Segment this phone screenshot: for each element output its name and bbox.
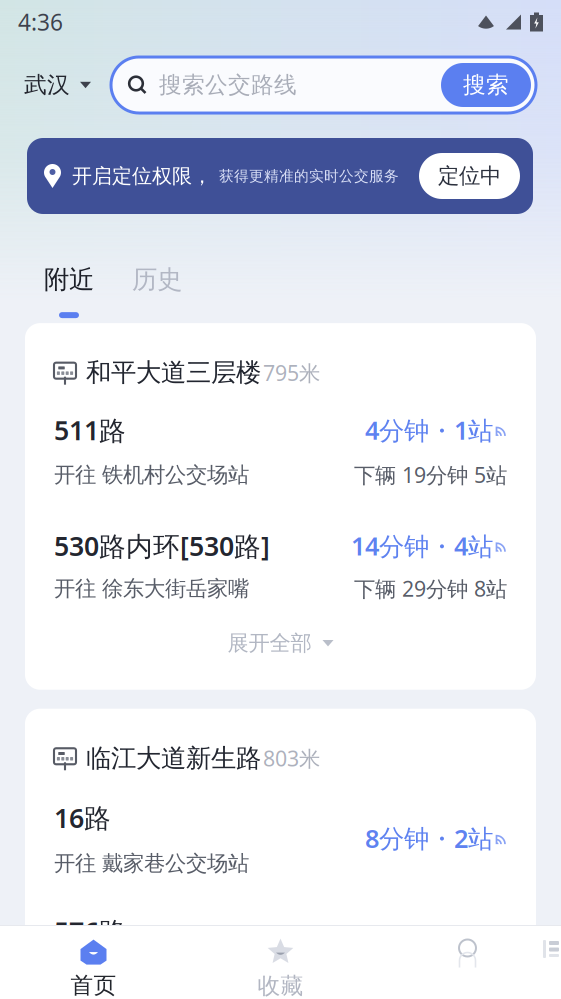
staticText: 下辆 19分钟 5站 — [354, 461, 507, 489]
staticText: 武汉 — [24, 71, 70, 99]
staticText: 搜索公交路线 — [159, 71, 297, 99]
button[interactable]: 首页 — [0, 925, 187, 999]
button[interactable]: 附近 — [0, 264, 112, 318]
button[interactable]: 历史 — [112, 264, 202, 318]
button[interactable]: 我的 — [374, 925, 561, 999]
staticText: 搜索 — [463, 71, 509, 99]
staticText: 576路 — [54, 913, 126, 949]
staticText: 首页 — [70, 972, 116, 999]
button[interactable]: 更多 — [541, 925, 561, 960]
staticText: 16路 — [54, 800, 111, 835]
staticText: 开往 徐东大街岳家嘴 — [54, 575, 249, 602]
staticText: 获得更精准的实时公交服务 — [219, 167, 399, 185]
button[interactable]: 搜索 — [441, 63, 531, 107]
staticText: 附近 — [44, 264, 94, 295]
staticText: 开启定位权限， — [72, 164, 212, 188]
staticText: 14分钟・4站 — [351, 529, 493, 562]
staticText: 开往 铁机村公交场站 — [54, 462, 249, 488]
button[interactable]: 武汉 — [0, 57, 111, 113]
staticText: 4分钟・1站 — [365, 413, 493, 447]
staticText: 开往 戴家巷公交场站 — [54, 850, 249, 876]
staticText: 803米 — [263, 744, 320, 772]
staticText: 511路 — [54, 412, 126, 448]
button[interactable]: 开启定位权限， — [0, 138, 561, 214]
staticText: 临江大道新生路 — [86, 743, 261, 774]
staticText: 和平大道三层楼 — [86, 357, 261, 388]
staticText: 定位中 — [438, 163, 501, 189]
staticText: 795米 — [263, 358, 320, 387]
staticText: 收藏 — [257, 972, 303, 999]
staticText: 展开全部 — [227, 630, 311, 656]
staticText: 下辆 29分钟 8站 — [354, 574, 507, 603]
staticText: 历史 — [132, 264, 182, 295]
staticText: 530路内环[530路] — [54, 528, 270, 563]
button[interactable]: 展开全部 — [54, 631, 507, 656]
staticText: 4:36 — [18, 7, 63, 37]
button[interactable]: 收藏 — [187, 925, 374, 999]
staticText: 8分钟・2站 — [365, 821, 493, 855]
